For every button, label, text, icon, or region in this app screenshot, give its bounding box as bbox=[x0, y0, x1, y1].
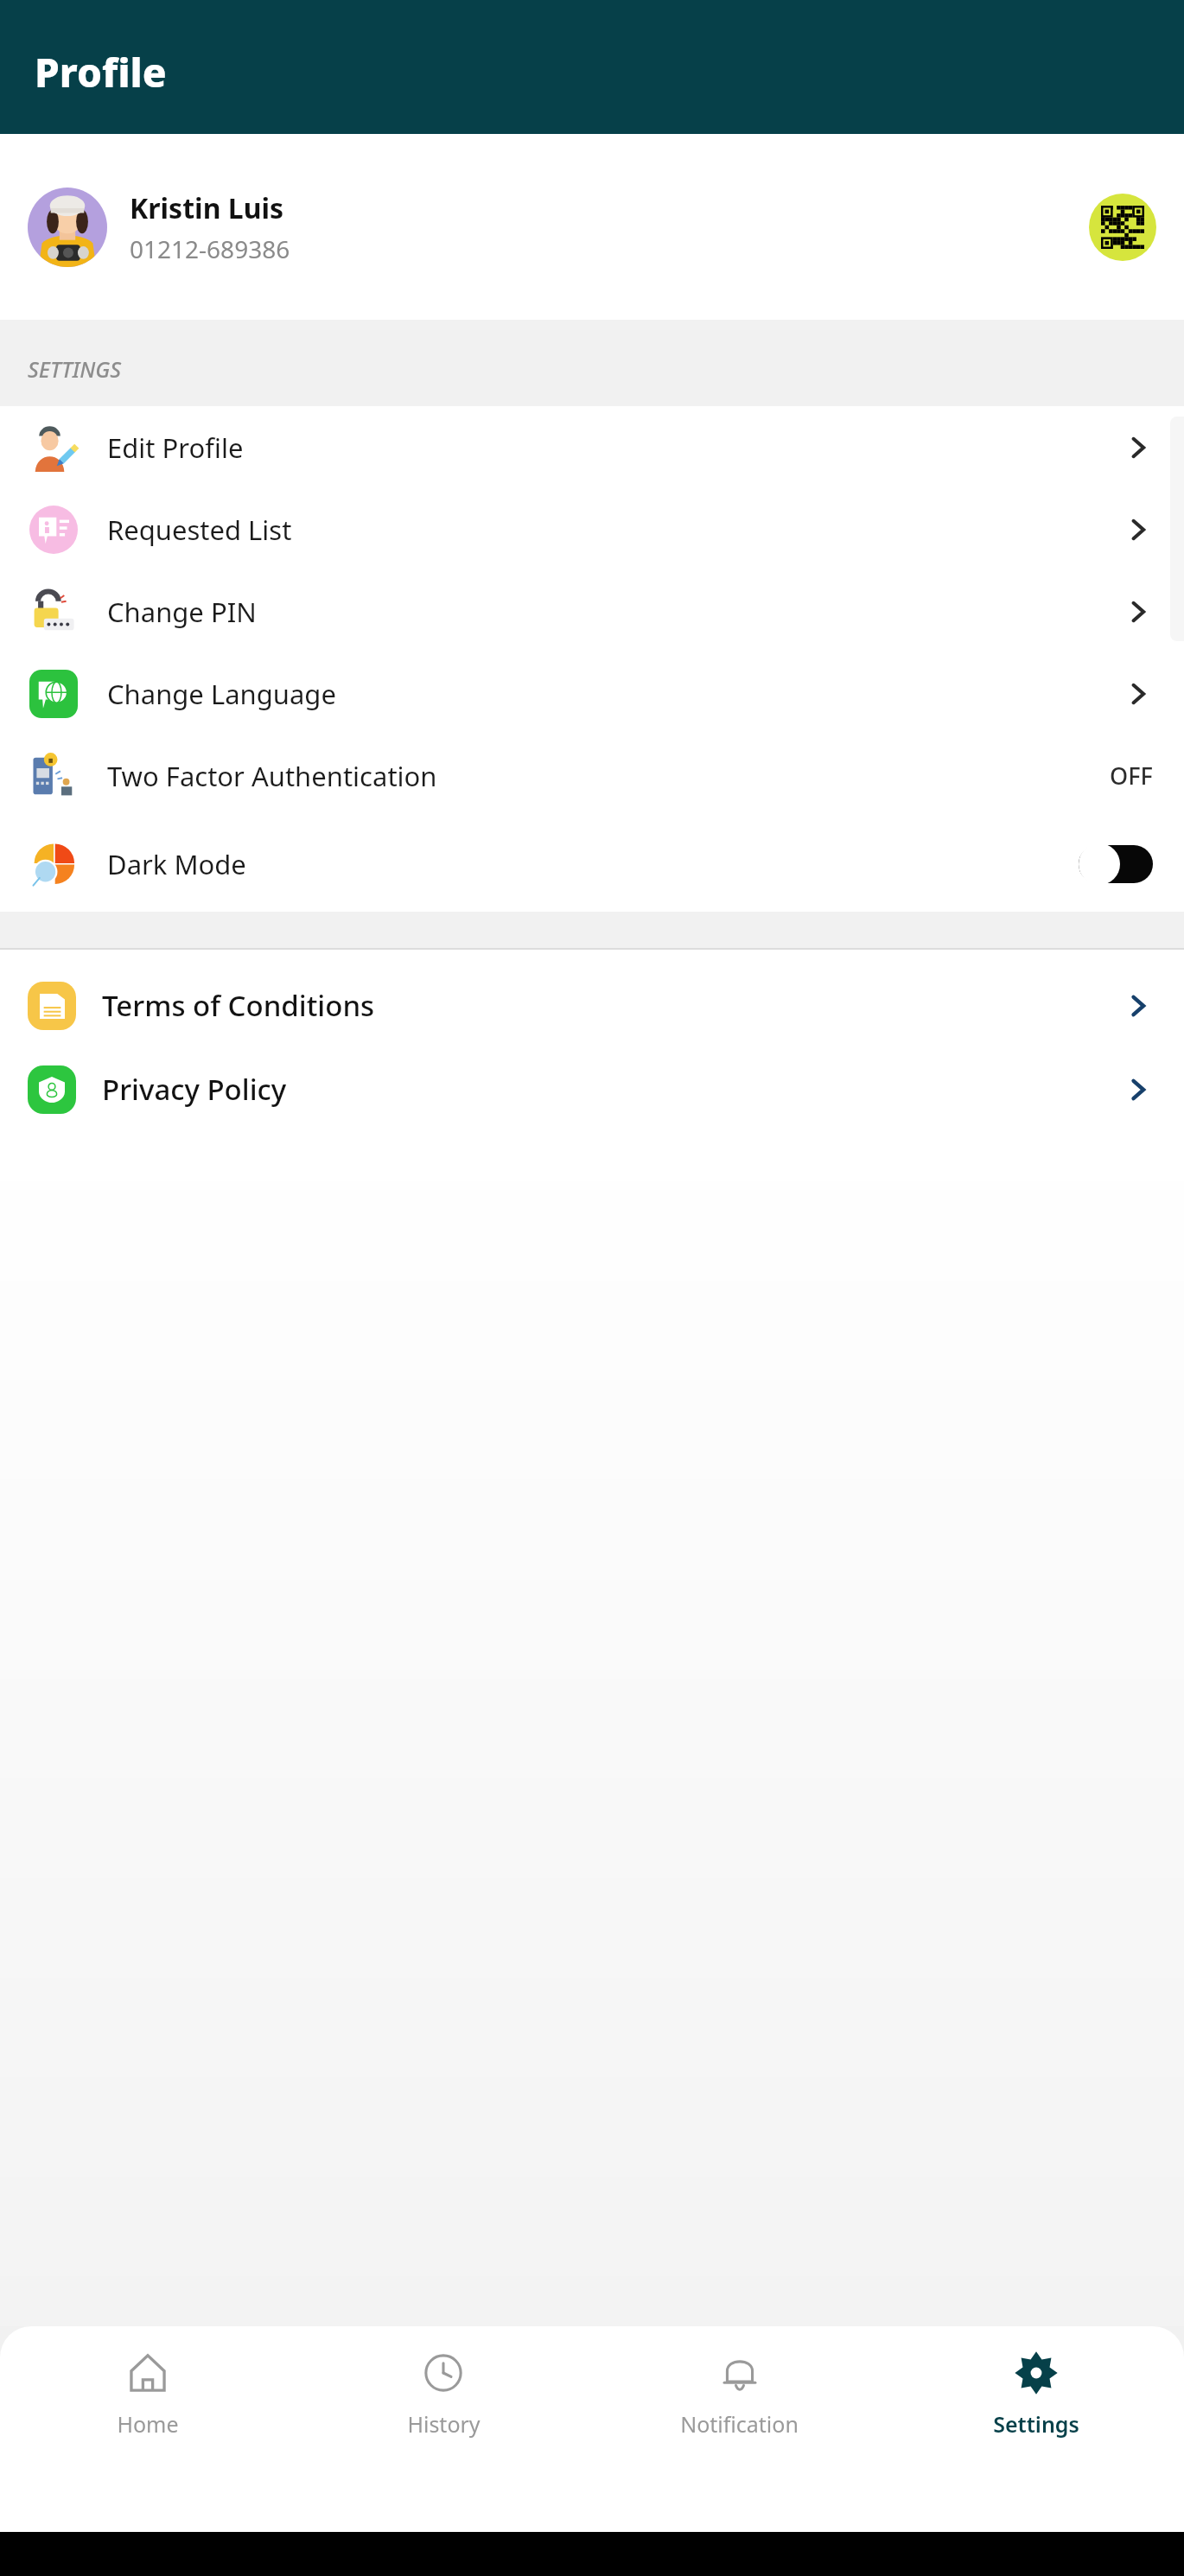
staticText: Privacy Policy bbox=[102, 1070, 1124, 1109]
staticText: Terms of Conditions bbox=[102, 986, 1124, 1025]
staticText: Settings bbox=[993, 2409, 1079, 2439]
staticText: Notification bbox=[680, 2409, 799, 2439]
button[interactable]: Home bbox=[0, 2349, 296, 2532]
button[interactable]: Kristin Luis bbox=[0, 134, 1184, 320]
button[interactable]: History bbox=[296, 2349, 591, 2532]
staticText: OFF bbox=[1110, 760, 1153, 792]
staticText: Kristin Luis bbox=[130, 189, 284, 227]
button[interactable]: Settings bbox=[888, 2349, 1184, 2532]
staticText: Requested List bbox=[107, 512, 1124, 548]
staticText: Change PIN bbox=[107, 594, 1124, 630]
button[interactable]: Edit Profile bbox=[0, 406, 1184, 488]
button[interactable]: Dark Mode bbox=[0, 817, 1184, 912]
staticText: Dark Mode bbox=[107, 846, 1079, 882]
staticText: SETTINGS bbox=[28, 354, 122, 384]
button[interactable]: Dark mode toggle, off bbox=[1079, 843, 1153, 885]
button[interactable]: Privacy Policy bbox=[0, 1047, 1184, 1131]
staticText: Two Factor Authentication bbox=[107, 758, 1110, 794]
staticText: Home bbox=[117, 2409, 179, 2439]
button[interactable]: Change Language bbox=[0, 652, 1184, 735]
staticText: Profile bbox=[35, 45, 167, 99]
staticText: Edit Profile bbox=[107, 429, 1124, 466]
button[interactable]: Terms of Conditions bbox=[0, 964, 1184, 1047]
button[interactable]: Notification bbox=[591, 2349, 888, 2532]
button[interactable]: Two Factor Authentication bbox=[0, 735, 1184, 817]
staticText: 01212-689386 bbox=[130, 232, 290, 265]
button[interactable]: Change PIN bbox=[0, 570, 1184, 652]
staticText: History bbox=[407, 2409, 481, 2439]
staticText: Change Language bbox=[107, 676, 1124, 712]
button[interactable]: Show QR code bbox=[1089, 194, 1156, 261]
button[interactable]: Requested List bbox=[0, 488, 1184, 570]
